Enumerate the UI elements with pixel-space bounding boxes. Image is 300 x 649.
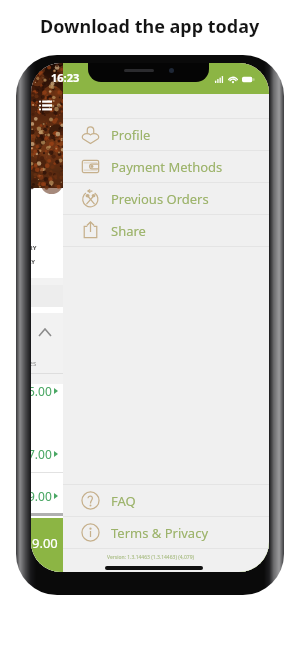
staticText: Previous Orders (111, 190, 209, 208)
staticText: 9.00 (31, 488, 52, 504)
staticText: es (31, 359, 37, 369)
staticText: Share (111, 222, 146, 240)
button[interactable]: Terms & Privacy (63, 517, 269, 548)
staticText: Payment Methods (111, 158, 223, 176)
staticText: 7.00 (31, 446, 52, 462)
staticText: 9.00 (32, 534, 58, 552)
button[interactable]: Profile (63, 119, 269, 150)
staticText: TODAY (31, 258, 35, 266)
button[interactable]: Share (63, 215, 269, 246)
staticText: FAQ (111, 492, 136, 510)
button[interactable]: Payment Methods (63, 151, 269, 182)
staticText: Profile (111, 126, 151, 144)
staticText: Download the app today (40, 14, 260, 39)
button[interactable]: Open navigation menu (33, 94, 58, 116)
button[interactable]: Previous Orders (63, 183, 269, 214)
staticText: DELIVERY (31, 244, 37, 252)
staticText: 5.00 (31, 383, 52, 399)
button[interactable]: FAQ (63, 485, 269, 516)
staticText: 16:23 (51, 70, 80, 85)
staticText: Version: 1.3.14463 (1.3.14463) (4,079) (107, 554, 195, 561)
staticText: Terms & Privacy (111, 524, 209, 542)
